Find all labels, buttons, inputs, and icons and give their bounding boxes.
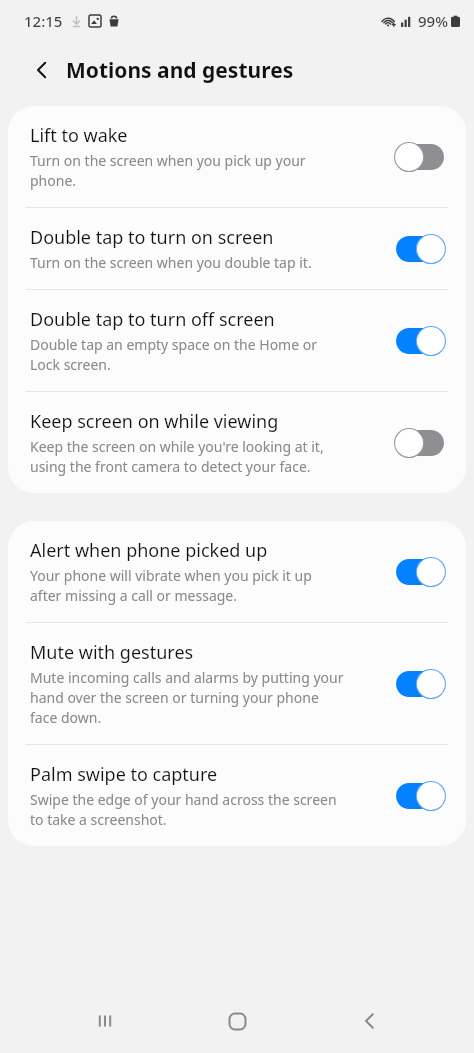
staticText: Motions and gestures xyxy=(66,56,294,85)
staticText: Your phone will vibrate when you pick it… xyxy=(30,566,312,605)
staticText: Double tap to turn off screen xyxy=(30,307,275,332)
staticText: 99% xyxy=(418,11,448,31)
button[interactable]: On xyxy=(394,556,446,588)
staticText: Keep the screen on while you're looking … xyxy=(30,437,324,476)
staticText: Double tap to turn on screen xyxy=(30,225,274,250)
button[interactable]: Back xyxy=(22,50,62,90)
button[interactable]: Mute with gestures xyxy=(8,623,466,744)
staticText: Mute with gestures xyxy=(30,640,194,665)
staticText: Lift to wake xyxy=(30,123,128,148)
staticText: Turn on the screen when you pick up your… xyxy=(30,151,306,190)
staticText: Swipe the edge of your hand across the s… xyxy=(30,790,337,829)
staticText: Mute incoming calls and alarms by puttin… xyxy=(30,668,344,727)
button[interactable]: On xyxy=(394,325,446,357)
button[interactable]: Palm swipe to capture xyxy=(8,745,466,846)
button[interactable]: Off xyxy=(394,427,446,459)
button[interactable]: Keep screen on while viewing xyxy=(8,392,466,493)
staticText: Turn on the screen when you double tap i… xyxy=(30,253,312,272)
button[interactable]: Lift to wake xyxy=(8,106,466,207)
staticText: Palm swipe to capture xyxy=(30,762,218,787)
button[interactable]: Home xyxy=(209,993,265,1049)
button[interactable]: Back xyxy=(342,993,398,1049)
staticText: Double tap an empty space on the Home or… xyxy=(30,335,317,374)
staticText: Keep screen on while viewing xyxy=(30,409,279,434)
staticText: 12:15 xyxy=(24,11,63,31)
button[interactable]: Off xyxy=(394,141,446,173)
button[interactable]: Double tap to turn on screen xyxy=(8,208,466,289)
button[interactable]: Recent apps xyxy=(77,993,133,1049)
button[interactable]: Alert when phone picked up xyxy=(8,521,466,622)
button[interactable]: On xyxy=(394,233,446,265)
button[interactable]: Double tap to turn off screen xyxy=(8,290,466,391)
button[interactable]: On xyxy=(394,780,446,812)
staticText: Alert when phone picked up xyxy=(30,538,268,563)
button[interactable]: On xyxy=(394,668,446,700)
